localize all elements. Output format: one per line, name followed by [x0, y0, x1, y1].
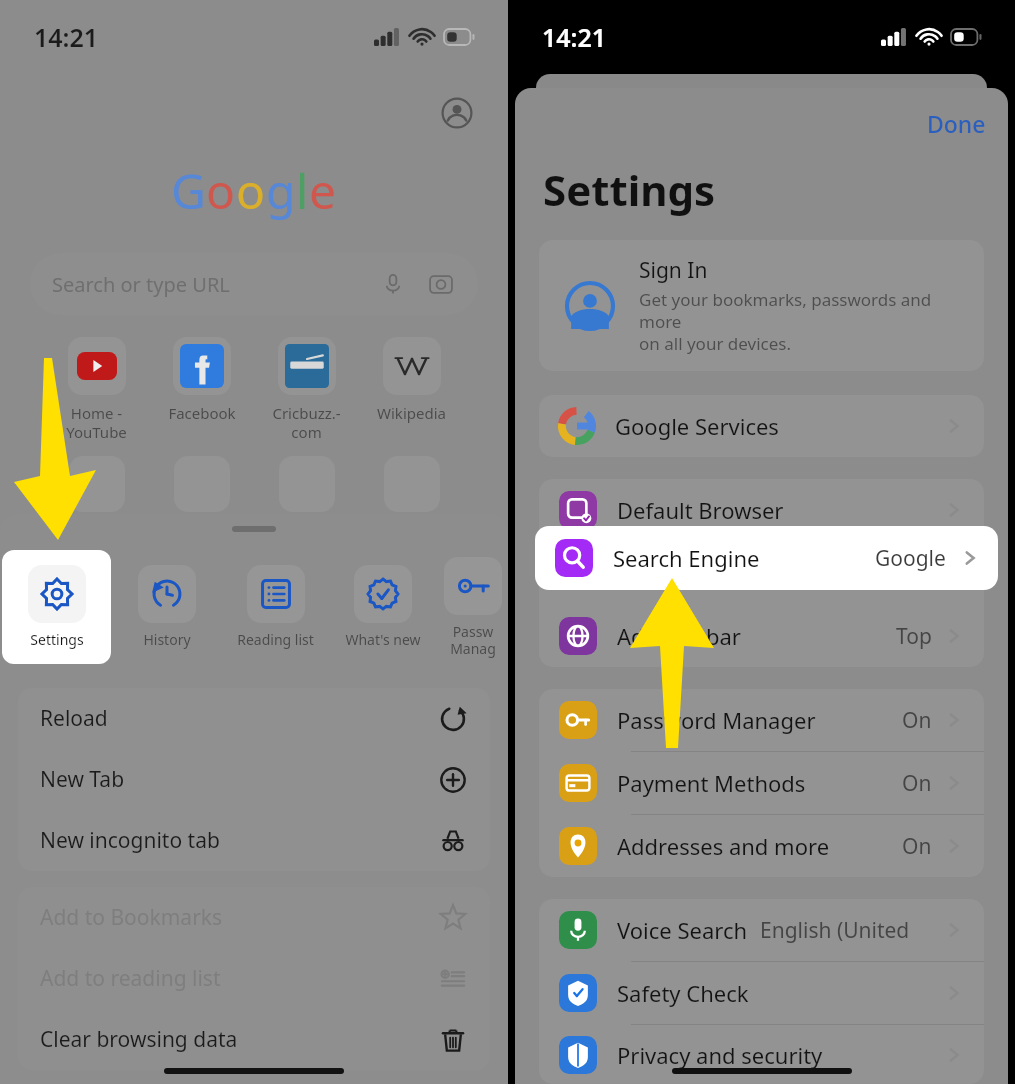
staticText: Add to reading list [40, 964, 438, 993]
staticText: Safety Check [617, 978, 932, 1008]
staticText: History [143, 630, 191, 649]
button[interactable]: What's new [329, 548, 437, 666]
button[interactable]: Sign In [539, 240, 984, 371]
button[interactable]: Privacy and security [539, 1025, 984, 1084]
staticText: g [266, 158, 296, 223]
staticText: What's new [345, 630, 421, 649]
button[interactable]: Search Engine [535, 526, 998, 590]
button[interactable]: New incognito tab [40, 810, 468, 871]
staticText: Get your bookmarks, passwords and more o… [639, 288, 968, 355]
staticText: On [902, 832, 932, 861]
staticText: l [296, 158, 309, 223]
button[interactable]: Reload [40, 688, 468, 749]
staticText: Facebook [168, 403, 236, 423]
button[interactable]: Addresses and more [539, 815, 984, 877]
staticText: G [171, 158, 206, 223]
button[interactable]: Wikipedia [359, 337, 464, 423]
staticText: Settings [30, 630, 84, 649]
staticText: New incognito tab [40, 826, 438, 855]
button[interactable]: New Tab [40, 749, 468, 810]
button[interactable]: Cricbuzz.- com [254, 337, 359, 442]
staticText: Google [875, 544, 946, 573]
staticText: o [206, 158, 236, 223]
button[interactable]: Reading list [221, 548, 329, 666]
button[interactable]: Password Manager [539, 689, 984, 751]
button[interactable]: Address bar [539, 605, 984, 667]
staticText: o [236, 158, 266, 223]
button[interactable]: Clear browsing data [40, 1009, 468, 1070]
button[interactable]: Done [927, 108, 986, 139]
staticText: Search or type URL [52, 271, 376, 298]
staticText: Google Services [615, 411, 932, 441]
staticText: Add to Bookmarks [40, 903, 438, 932]
button[interactable]: Passw Manag [437, 548, 508, 666]
button[interactable]: Settings [2, 550, 111, 664]
staticText: Reading list [237, 630, 314, 649]
staticText: Reload [40, 704, 438, 733]
staticText: New Tab [40, 765, 438, 794]
button[interactable]: Default Browser [539, 479, 984, 541]
button[interactable]: Facebook [149, 337, 254, 423]
staticText: Cricbuzz.- com [272, 403, 341, 442]
button[interactable]: Home - YouTube [44, 337, 149, 442]
button[interactable]: Search or type URL [30, 253, 478, 315]
button[interactable]: Account [440, 96, 474, 130]
staticText: Clear browsing data [40, 1025, 438, 1054]
button[interactable]: Safety Check [539, 962, 984, 1024]
button[interactable]: History [113, 548, 221, 666]
staticText: Done [927, 108, 986, 139]
staticText: Wikipedia [377, 403, 446, 423]
staticText: Settings [543, 161, 716, 218]
staticText: English (United St… [760, 916, 932, 945]
staticText: e [309, 158, 337, 223]
staticText: Privacy and security [617, 1040, 932, 1070]
staticText: On [902, 769, 932, 798]
staticText: Top [896, 622, 932, 651]
button[interactable]: Add to reading list [40, 948, 468, 1009]
staticText: Sign In [639, 256, 708, 285]
staticText: Address bar [617, 621, 896, 651]
staticText: Passw Manag [450, 622, 496, 658]
staticText: 14:21 [34, 20, 99, 54]
button[interactable]: Voice Search [539, 899, 984, 961]
button[interactable]: Payment Methods [539, 752, 984, 814]
staticText: Search Engine [613, 543, 875, 573]
staticText: On [902, 706, 932, 735]
staticText: Voice Search [617, 915, 748, 945]
staticText: Home - YouTube [66, 403, 127, 442]
staticText: 14:21 [542, 20, 607, 54]
staticText: Addresses and more [617, 831, 902, 861]
button[interactable]: Google Services [539, 395, 984, 457]
staticText: Password Manager [617, 705, 902, 735]
staticText: Default Browser [617, 495, 932, 525]
staticText: Payment Methods [617, 768, 902, 798]
